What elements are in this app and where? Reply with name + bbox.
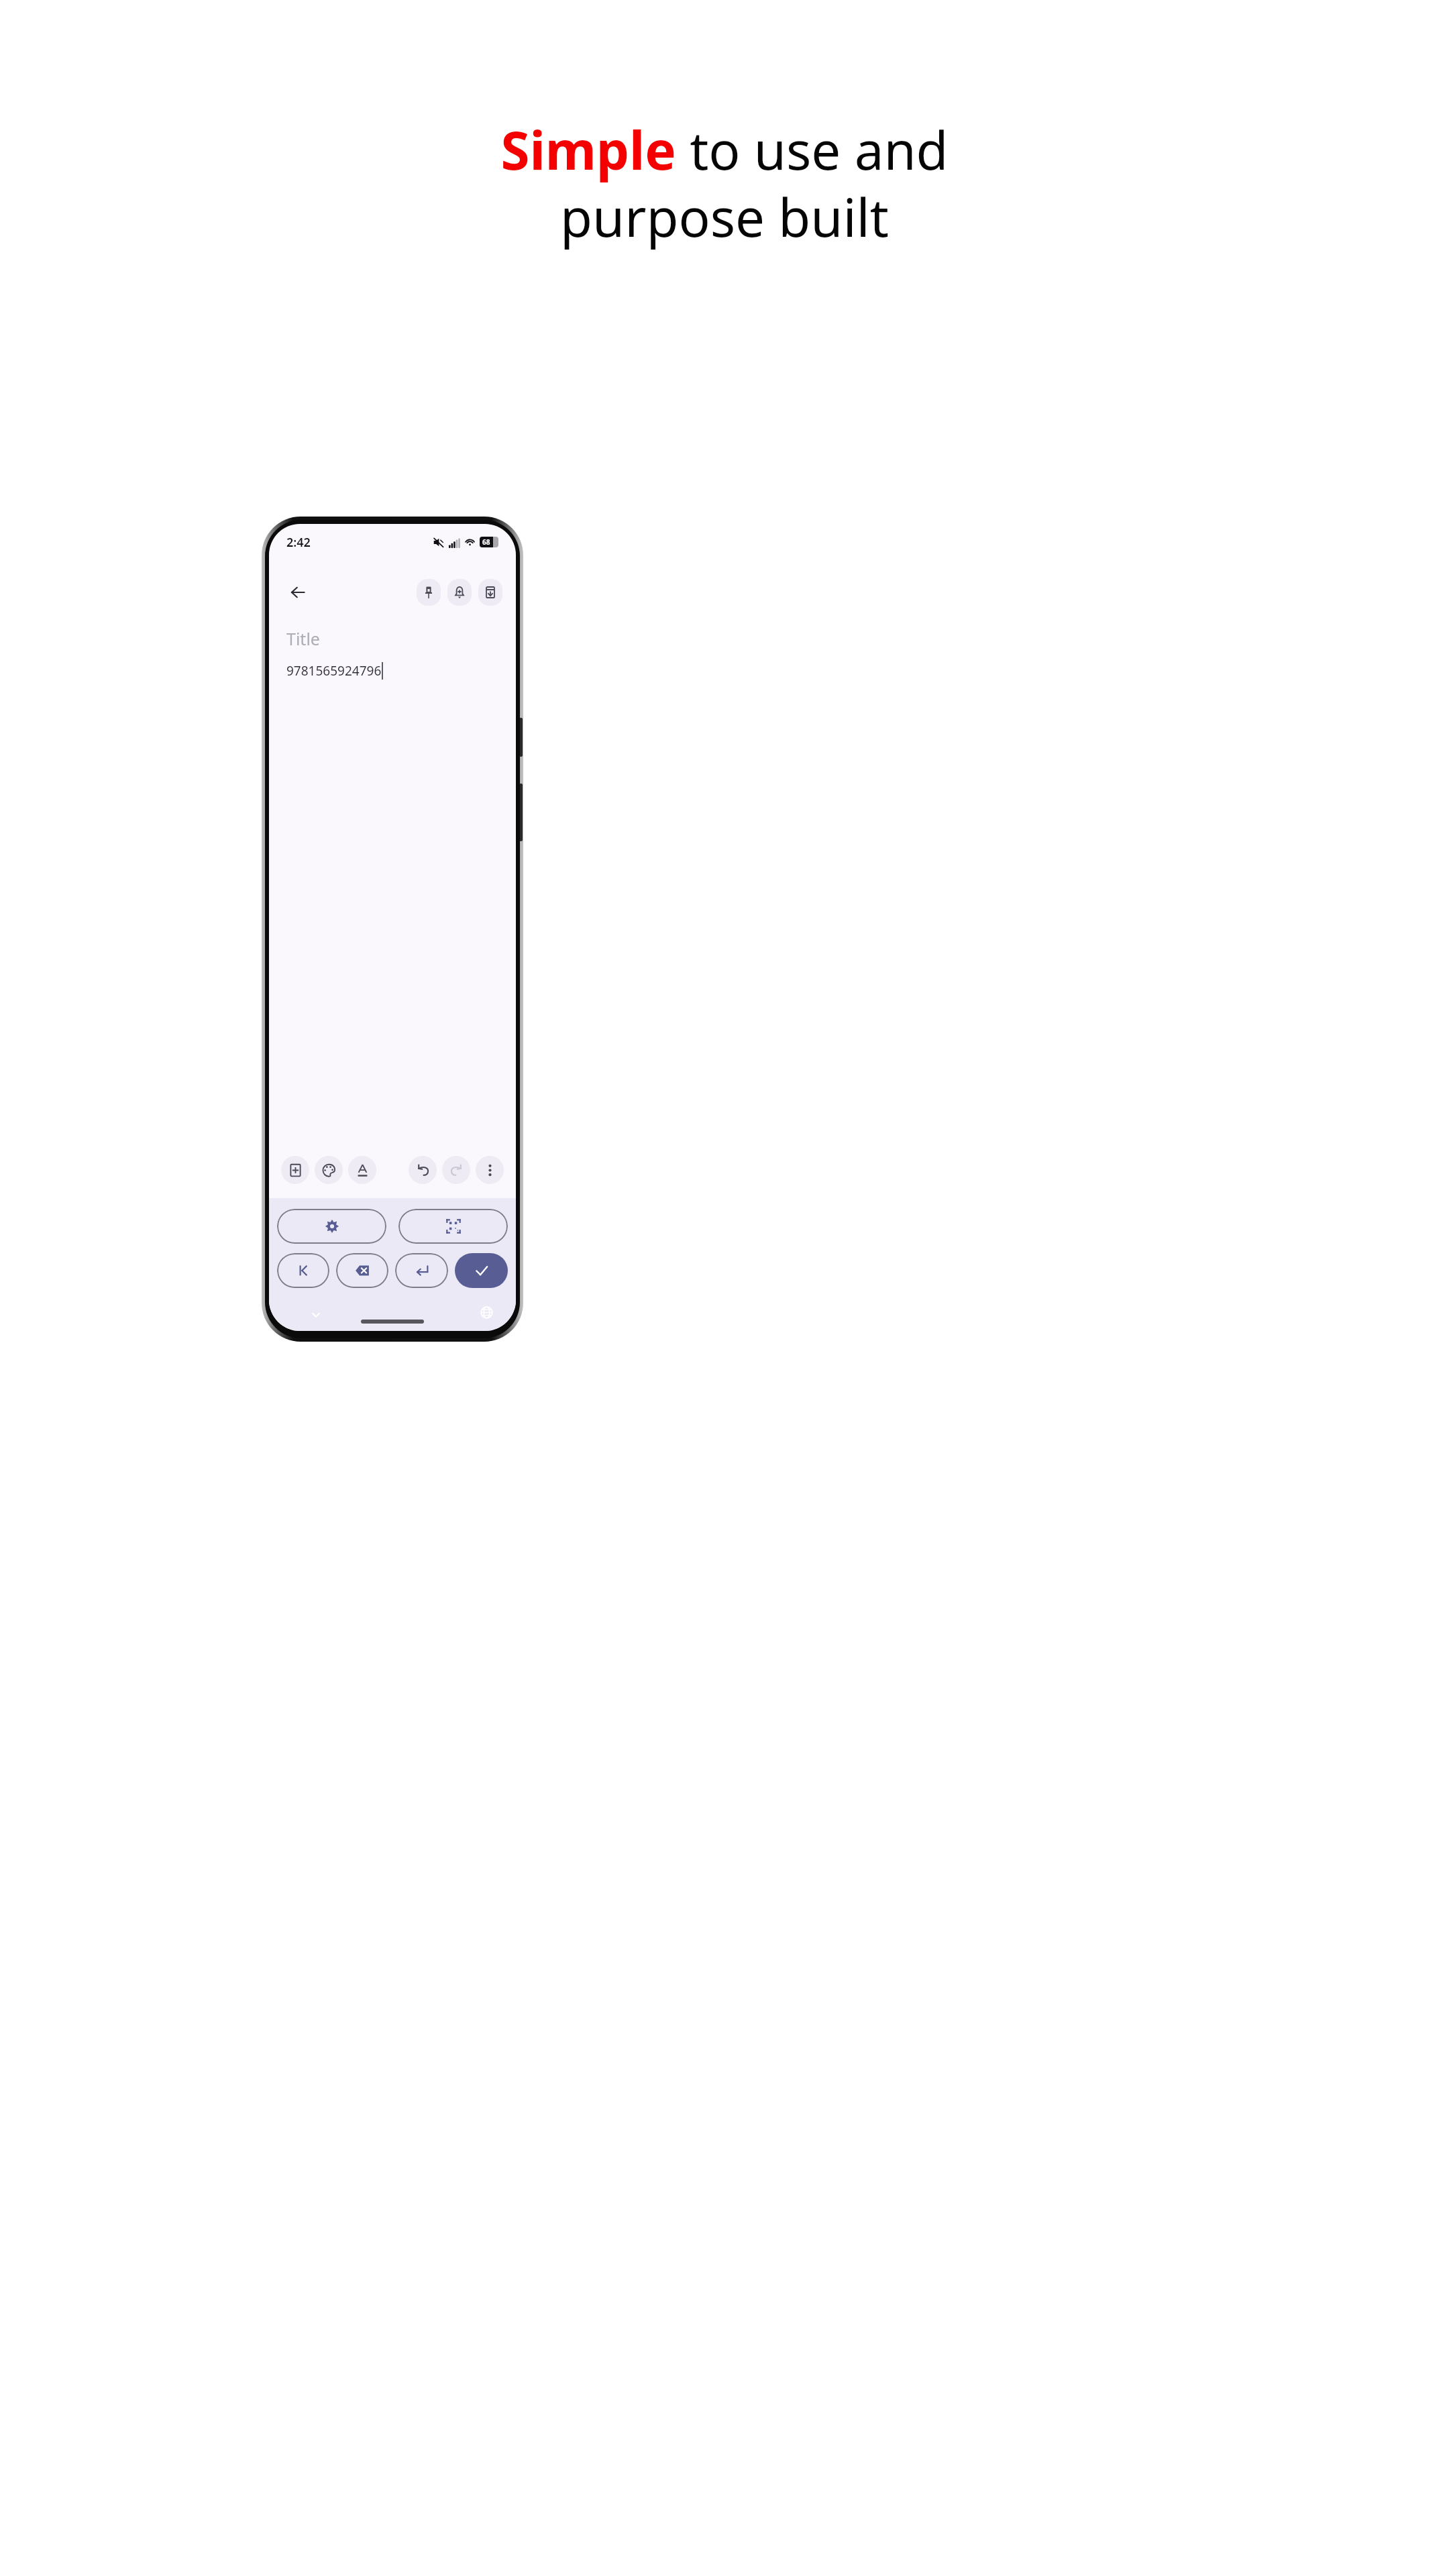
button[interactable]: Scan barcode	[398, 1209, 508, 1244]
staticText: Title	[286, 627, 320, 650]
button[interactable]: Undo	[409, 1156, 437, 1184]
staticText: Simple to use and purpose built	[500, 114, 949, 252]
button[interactable]: Keyboard settings	[277, 1209, 386, 1244]
staticText: 9781565924796	[286, 662, 382, 680]
button[interactable]: Back	[284, 578, 312, 606]
staticText: 2:42	[286, 534, 311, 551]
button[interactable]: More options	[476, 1156, 504, 1184]
button[interactable]: Archive	[478, 579, 502, 606]
button[interactable]: Pin note	[417, 579, 441, 606]
button[interactable]: Confirm	[455, 1253, 508, 1288]
button[interactable]: Text format	[348, 1156, 376, 1184]
button[interactable]: Redo	[442, 1156, 470, 1184]
button[interactable]: Backspace	[336, 1253, 388, 1288]
button[interactable]: Change language	[480, 1306, 493, 1319]
staticText: 68	[482, 537, 490, 547]
button[interactable]: Hide keyboard	[311, 1309, 321, 1320]
button[interactable]: Add reminder	[447, 579, 472, 606]
button[interactable]: Colour	[315, 1156, 343, 1184]
button[interactable]: New line	[395, 1253, 448, 1288]
button[interactable]: Add attachment	[281, 1156, 309, 1184]
button[interactable]: Move to start	[277, 1253, 329, 1288]
